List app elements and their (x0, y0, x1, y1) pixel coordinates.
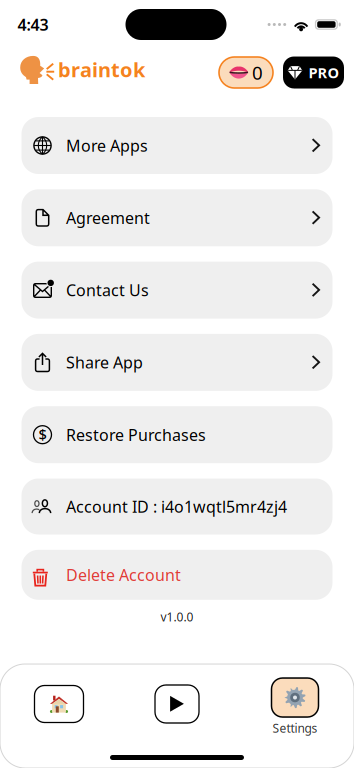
staticText: braintok (58, 56, 145, 83)
button[interactable]: Share App (21, 334, 332, 391)
staticText: Settings (272, 720, 317, 736)
button[interactable]: Account ID : i4o1wqtl5mr4zj4 (21, 478, 332, 534)
staticText: 0 (252, 60, 263, 85)
staticText: Restore Purchases (66, 424, 206, 445)
button[interactable]: More Apps (21, 117, 332, 174)
staticText: PRO (308, 63, 339, 82)
button[interactable]: Play (155, 695, 199, 733)
button[interactable]: Contact Us (21, 262, 332, 319)
staticText: Agreement (66, 207, 150, 228)
button[interactable]: $ (21, 406, 332, 463)
staticText: Delete Account (66, 564, 181, 585)
staticText: Share App (66, 352, 143, 373)
staticText: Contact Us (66, 279, 149, 301)
button[interactable]: Home (34, 695, 83, 732)
staticText: More Apps (66, 135, 148, 156)
staticText: 4:43 (17, 14, 48, 35)
staticText: v1.0.0 (160, 609, 193, 625)
staticText: $ (38, 424, 46, 444)
button[interactable]: Credits (219, 57, 273, 88)
button[interactable]: PRO (283, 56, 344, 88)
staticText: Account ID : i4o1wqtl5mr4zj4 (66, 496, 287, 517)
button[interactable]: Delete Account (21, 550, 332, 600)
button[interactable]: Agreement (21, 189, 332, 246)
button[interactable]: Settings (271, 685, 318, 743)
